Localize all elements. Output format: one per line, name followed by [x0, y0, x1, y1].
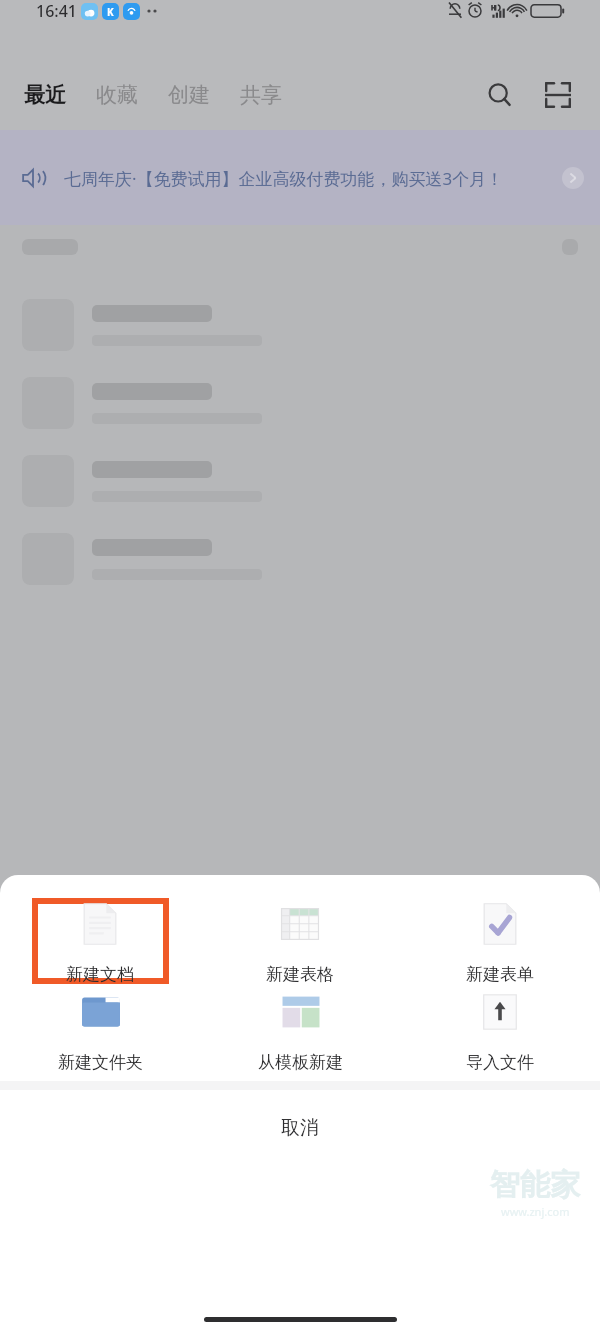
button[interactable]: 导入文件 [400, 986, 600, 1072]
button[interactable]: Search [478, 73, 522, 117]
button[interactable]: 新建表格 [200, 898, 400, 984]
button[interactable]: 新建文件夹 [0, 986, 200, 1072]
button[interactable]: Scan [536, 73, 580, 117]
staticText: 最近 [24, 82, 66, 108]
staticText: 16:41 [36, 0, 77, 22]
staticText: 共享 [240, 82, 282, 108]
button[interactable]: 取消 [0, 1090, 600, 1166]
button[interactable]: 创建 [166, 74, 212, 116]
staticText: 从模板新建 [258, 1052, 343, 1072]
staticText: 导入文件 [466, 1052, 534, 1072]
staticText: 收藏 [96, 82, 138, 108]
staticText: 新建文档 [66, 964, 134, 984]
staticText: 七周年庆·【免费试用】企业高级付费功能，购买送3个月！ [64, 167, 504, 190]
staticText: 创建 [168, 82, 210, 108]
button[interactable]: 新建表单 [400, 898, 600, 984]
button[interactable]: 七周年庆·【免费试用】企业高级付费功能，购买送3个月！ [0, 130, 600, 225]
staticText: K [107, 5, 114, 19]
button[interactable]: 最近 [22, 74, 68, 116]
staticText: 我打开 [273, 1304, 327, 1327]
staticText: www.znj.com [501, 1204, 570, 1219]
button[interactable]: 收藏 [94, 74, 140, 116]
staticText: 取消 [281, 1116, 319, 1140]
button[interactable]: 共享 [238, 74, 284, 116]
staticText: 新建表格 [266, 964, 334, 984]
button[interactable]: 从模板新建 [200, 986, 400, 1072]
staticText: 新建表单 [466, 964, 534, 984]
staticText: 智能家 [490, 1166, 580, 1204]
staticText: 新建文件夹 [58, 1052, 143, 1072]
button[interactable]: 新建文档 [0, 898, 200, 984]
